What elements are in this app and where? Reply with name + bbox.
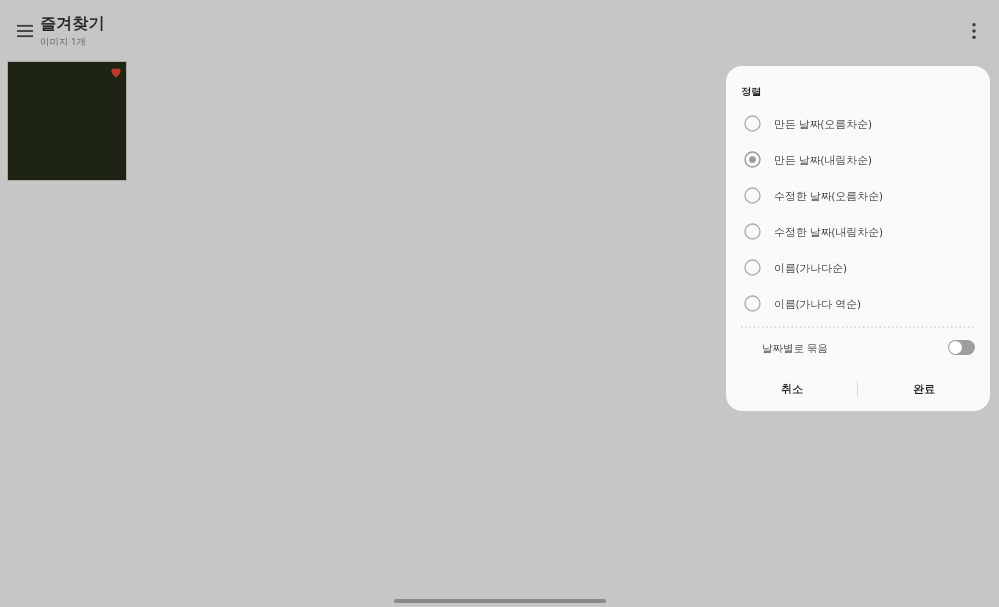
staticText: 수정한 날짜(내림차순) <box>774 224 883 239</box>
staticText: 날짜별로 묶음 <box>762 341 828 355</box>
button[interactable]: 만든 날짜(내림차순) <box>726 141 990 177</box>
button[interactable]: 취소 <box>726 367 857 411</box>
staticText: 이름(가나다 역순) <box>774 296 861 311</box>
button[interactable] <box>8 62 126 180</box>
staticText: 만든 날짜(내림차순) <box>774 152 872 167</box>
staticText: 취소 <box>781 382 803 396</box>
button[interactable]: 이름(가나다 역순) <box>726 285 990 321</box>
button[interactable]: 만든 날짜(오름차순) <box>726 105 990 141</box>
staticText: 만든 날짜(오름차순) <box>774 116 872 131</box>
button[interactable]: More options <box>959 16 989 46</box>
button[interactable]: 완료 <box>858 367 990 411</box>
staticText: 즐겨찾기 <box>40 14 104 34</box>
staticText: 이미지 1개 <box>40 35 86 48</box>
button[interactable]: 날짜별로 묶음 <box>726 328 990 367</box>
staticText: 수정한 날짜(오름차순) <box>774 188 883 203</box>
button[interactable]: 수정한 날짜(내림차순) <box>726 213 990 249</box>
staticText: 완료 <box>913 382 935 396</box>
staticText: 정렬 <box>741 85 761 98</box>
button[interactable]: Menu <box>10 16 40 46</box>
button[interactable]: 수정한 날짜(오름차순) <box>726 177 990 213</box>
staticText: 이름(가나다순) <box>774 260 847 275</box>
button[interactable]: 이름(가나다순) <box>726 249 990 285</box>
